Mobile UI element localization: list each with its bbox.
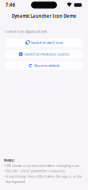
staticText: Dynamic Launcher Icon Demo <box>11 13 76 19</box>
staticText: • Icons/strings have effect when the app… <box>4 174 82 179</box>
staticText: 7:46 <box>5 2 15 8</box>
staticText: Current icon: AppIconDark <box>5 29 47 34</box>
button[interactable]: Switch to dark icon <box>5 38 83 47</box>
button[interactable]: Switch to Predictive Glance <box>5 50 83 58</box>
staticText: • Use the 'silent' parameter cautiously. <box>4 169 65 173</box>
staticText: Reset to default <box>34 63 59 68</box>
staticText: Switch to dark icon <box>31 40 63 45</box>
button[interactable]: Reset to default <box>5 61 83 70</box>
staticText: • iOS shows a system alert when changing… <box>4 164 80 168</box>
staticText: background. <box>4 180 26 184</box>
staticText: Notes: <box>4 158 15 163</box>
staticText: Switch to Predictive Glance <box>24 52 69 57</box>
